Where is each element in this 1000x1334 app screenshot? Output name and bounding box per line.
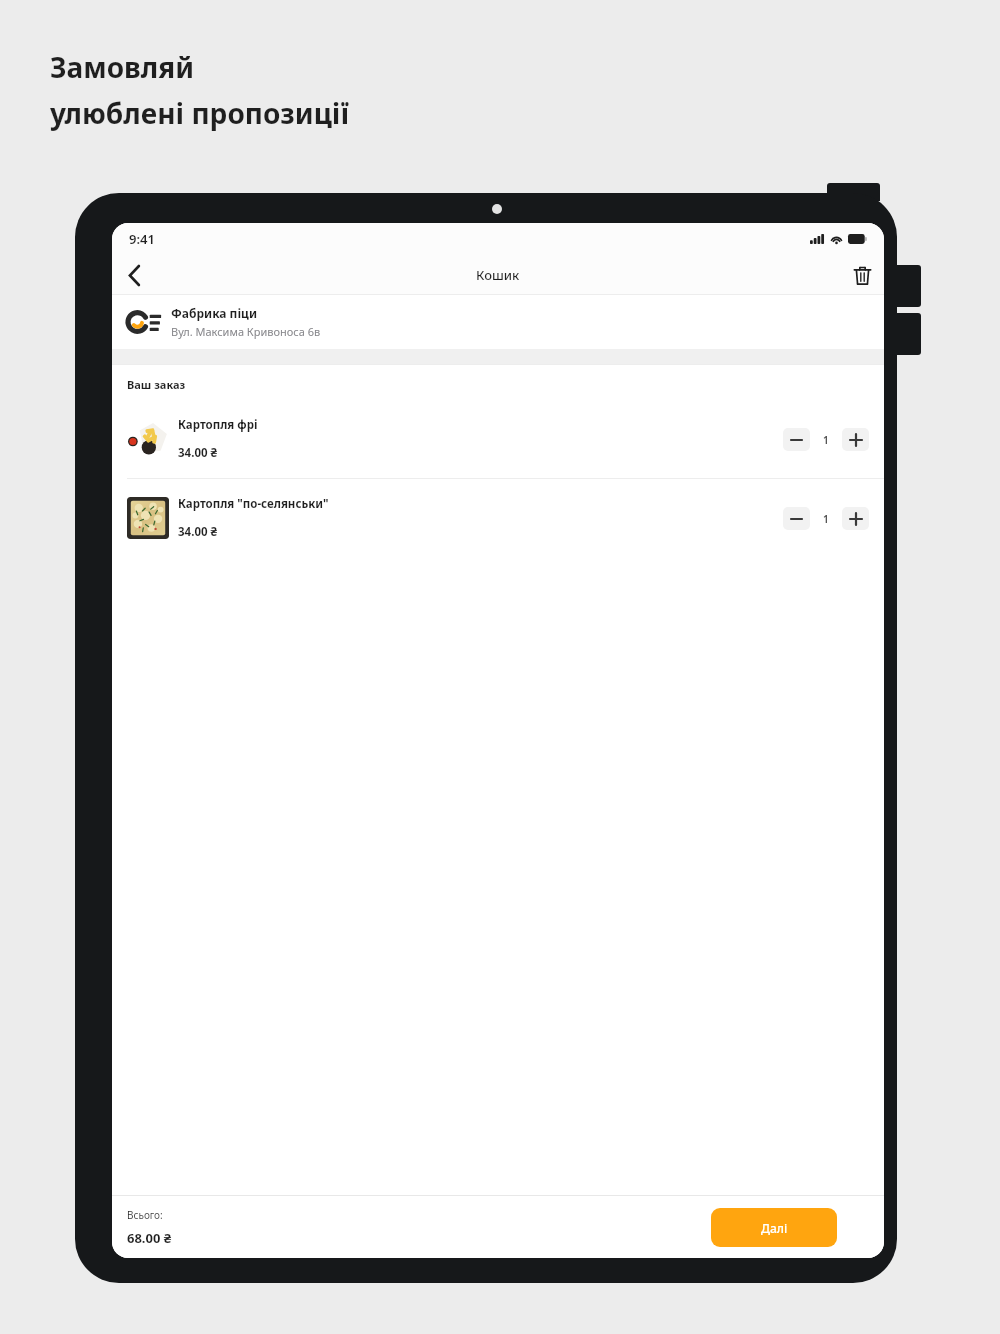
staticText: 1 bbox=[823, 512, 829, 526]
button[interactable]: Increase quantity bbox=[842, 428, 869, 451]
button[interactable]: Decrease quantity bbox=[783, 428, 810, 451]
staticText: Ваш заказ bbox=[127, 377, 186, 392]
staticText: Далі bbox=[761, 1220, 788, 1236]
staticText: 34.00 ₴ bbox=[178, 524, 218, 540]
staticText: Фабрика піци bbox=[171, 305, 257, 321]
staticText: Картопля фрі bbox=[178, 417, 258, 433]
staticText: Картопля "по-селянськи" bbox=[178, 496, 329, 512]
button[interactable]: Далі bbox=[711, 1208, 837, 1247]
button[interactable]: Картопля фрі bbox=[112, 400, 884, 478]
staticText: 34.00 ₴ bbox=[178, 445, 218, 461]
staticText: Кошик bbox=[476, 266, 520, 284]
staticText: Всього: bbox=[127, 1208, 163, 1222]
button[interactable]: Картопля "по-селянськи" bbox=[112, 479, 884, 557]
staticText: Вул. Максима Кривоноса 6в bbox=[171, 324, 321, 339]
button[interactable]: Increase quantity bbox=[842, 507, 869, 530]
staticText: улюблені пропозиції bbox=[50, 94, 349, 132]
button[interactable]: Фабрика піци bbox=[112, 295, 884, 349]
staticText: 9:41 bbox=[129, 230, 155, 248]
button[interactable]: Back bbox=[112, 255, 156, 295]
staticText: 68.00 ₴ bbox=[127, 1229, 172, 1247]
staticText: Замовляй bbox=[50, 48, 195, 86]
staticText: 1 bbox=[823, 433, 829, 447]
button[interactable]: Delete all bbox=[840, 255, 884, 295]
button[interactable]: Decrease quantity bbox=[783, 507, 810, 530]
